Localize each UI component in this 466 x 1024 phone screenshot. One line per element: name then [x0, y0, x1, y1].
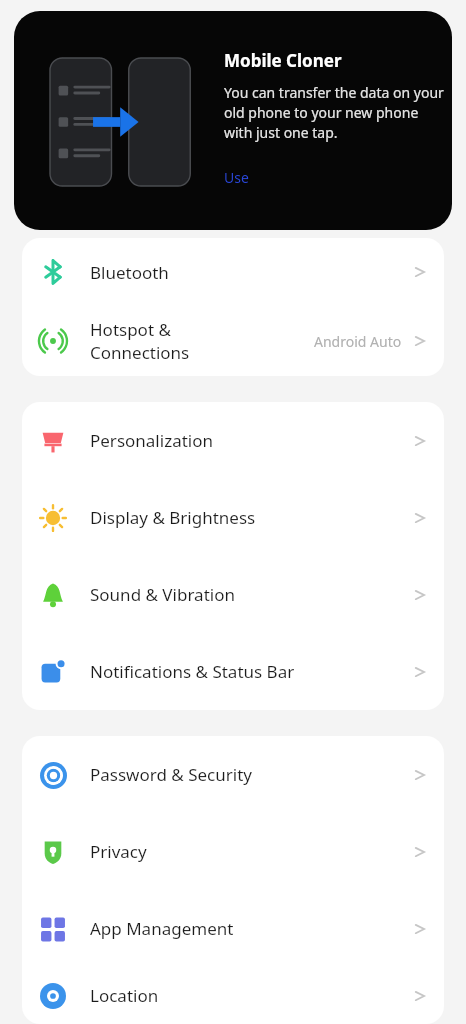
button[interactable]: Notifications and Status Bar: [22, 633, 444, 710]
staticText: Display & Brightness: [90, 506, 256, 529]
button[interactable]: Bluetooth: [22, 238, 444, 306]
other: Password and Security: [40, 762, 67, 789]
staticText: Password & Security: [90, 763, 252, 786]
other: Privacy: [40, 839, 66, 865]
button[interactable]: Mobile Cloner: [14, 11, 452, 230]
staticText: Hotspot &: [90, 318, 171, 341]
button[interactable]: Sound and Vibration: [22, 556, 444, 633]
staticText: Connections: [90, 341, 190, 364]
button[interactable]: App Management: [22, 890, 444, 967]
staticText: Android Auto: [314, 332, 402, 351]
staticText: You can transfer the data on your old ph…: [224, 83, 448, 142]
button[interactable]: Hotspot and Connections: [22, 306, 444, 376]
button[interactable]: Password and Security: [22, 736, 444, 813]
staticText: Notifications & Status Bar: [90, 660, 295, 683]
other: Notifications and Status Bar: [40, 659, 66, 685]
button[interactable]: Display and Brightness: [22, 479, 444, 556]
other: App Management: [40, 916, 66, 942]
other: Hotspot and Connections: [39, 327, 67, 355]
staticText: Personalization: [90, 429, 213, 452]
other: Sound and Vibration: [40, 582, 66, 608]
staticText: Bluetooth: [90, 261, 169, 284]
other: Personalization: [40, 428, 66, 454]
staticText: Location: [90, 984, 159, 1007]
other: Location: [40, 983, 66, 1009]
button[interactable]: Location: [22, 967, 444, 1024]
staticText: Mobile Cloner: [224, 49, 342, 72]
other: Display and Brightness: [39, 504, 67, 532]
button[interactable]: Personalization: [22, 402, 444, 479]
staticText: Use: [224, 168, 249, 187]
staticText: App Management: [90, 917, 234, 940]
other: Bluetooth: [40, 259, 66, 285]
staticText: Sound & Vibration: [90, 583, 235, 606]
button[interactable]: Use: [224, 166, 249, 189]
staticText: Privacy: [90, 840, 147, 863]
button[interactable]: Privacy: [22, 813, 444, 890]
